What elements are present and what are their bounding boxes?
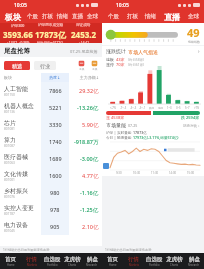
staticText: -7~-5 <box>120 106 127 110</box>
staticText: 全球 <box>87 13 98 20</box>
staticText: 2453.2 <box>71 29 97 40</box>
staticText: 连板 <box>106 57 116 62</box>
staticText: 打板 <box>42 13 53 20</box>
staticText: 1行情助力当日股利量能变化走势 <box>3 248 50 252</box>
staticText: 解盘 <box>189 256 200 263</box>
staticText: 首页 <box>5 256 16 263</box>
button[interactable]: 芯片 <box>0 116 102 133</box>
staticText: 历史对比 › <box>183 123 200 128</box>
staticText: 涨 4538家 <box>106 115 125 120</box>
staticText: +13.07 +0.36% <box>7 41 30 43</box>
staticText: 行情 <box>128 256 139 263</box>
staticText: 电力设备 <box>4 221 28 229</box>
button[interactable]: 沪深300 <box>2 23 34 43</box>
button[interactable]: 首页 <box>102 253 123 269</box>
staticText: 首页 <box>107 256 118 263</box>
staticText: 14:00 <box>169 171 177 175</box>
staticText: Markets <box>129 263 139 267</box>
button[interactable]: 解盘 <box>82 253 102 269</box>
staticText: 10:05 <box>116 2 129 9</box>
staticText: 自选股 <box>146 256 163 263</box>
staticText: Charts <box>68 263 76 267</box>
button[interactable]: 电力设备 <box>0 218 102 235</box>
staticText: 801063 <box>4 161 15 165</box>
staticText: 17973亿(-3.11%,缩量574亿) <box>133 135 179 140</box>
button[interactable]: 直播 <box>70 10 85 23</box>
staticText: 文化传媒 <box>4 170 28 178</box>
staticText: (昨日58家) <box>128 57 145 62</box>
staticText: 今日 | 预测量能 <box>106 135 133 140</box>
staticText: 11:30 <box>151 171 159 175</box>
button[interactable]: 行情 <box>21 253 42 269</box>
button[interactable]: 打板 <box>40 10 55 23</box>
button[interactable]: 文化传媒 <box>0 167 102 184</box>
staticText: 29.32亿 <box>79 87 99 95</box>
button[interactable]: 机器人概念 <box>0 99 102 116</box>
staticText: 07-25 尾盘抢筹 <box>70 49 98 54</box>
staticText: 行业 <box>40 63 50 69</box>
button[interactable]: 自选股 <box>144 253 164 269</box>
button[interactable]: 直播 <box>159 10 184 23</box>
staticText: 工具 <box>92 67 98 71</box>
button[interactable]: 龙虎榜 <box>62 253 82 269</box>
staticText: 07-25 <box>128 123 138 128</box>
button[interactable]: 全球 <box>85 10 100 23</box>
button[interactable]: 人工智能 <box>0 82 102 99</box>
staticText: 情绪 <box>145 13 156 20</box>
button[interactable]: 板块 <box>2 10 24 23</box>
staticText: Research <box>188 263 200 267</box>
button[interactable]: 深证成指 <box>67 23 100 43</box>
staticText: Portfolio <box>47 263 58 267</box>
button[interactable]: 龙虎榜 <box>164 253 184 269</box>
button[interactable]: 展开 <box>103 163 109 169</box>
staticText: 跌 2594家 <box>181 115 200 120</box>
button[interactable]: 情绪 <box>141 10 159 23</box>
button[interactable]: 自选股 <box>42 253 62 269</box>
button[interactable]: 市场量能 <box>106 122 200 129</box>
staticText: 涨跌统计 <box>106 48 128 55</box>
button[interactable]: 精选 <box>4 61 30 70</box>
button[interactable]: 涨跌统计 <box>106 46 200 57</box>
staticText: 2.10亿 <box>82 223 99 231</box>
button[interactable]: 个股 <box>24 10 40 23</box>
staticText: 801150 <box>4 93 15 97</box>
staticText: 打板 <box>127 13 138 20</box>
button[interactable]: 行情 <box>123 253 144 269</box>
button[interactable]: 沪深两市成交额 <box>34 23 67 43</box>
staticText: 全球 <box>188 13 199 20</box>
staticText: 10:30 <box>133 171 141 175</box>
staticText: 1600 <box>49 172 62 179</box>
staticText: -1.25亿 <box>80 206 99 214</box>
staticText: 801081 <box>4 127 15 131</box>
staticText: 个股 <box>27 13 38 20</box>
staticText: 尾盘抢筹 <box>4 47 30 55</box>
staticText: 个股 <box>108 13 119 20</box>
staticText: 实控人变更 <box>4 204 34 212</box>
button[interactable]: 实控人变更 <box>0 201 102 218</box>
staticText: 情绪指数 <box>188 40 200 44</box>
button[interactable]: 首页 <box>0 253 21 269</box>
staticText: 板块 <box>5 12 21 22</box>
staticText: 深证成指 <box>76 23 91 28</box>
button[interactable]: 全球 <box>184 10 202 23</box>
staticText: 3593.66 <box>3 29 33 40</box>
staticText: -5~-3 <box>130 106 137 110</box>
button[interactable]: 个股 <box>104 10 123 23</box>
staticText: 801076 <box>4 195 15 199</box>
button[interactable]: 打板 <box>123 10 141 23</box>
button[interactable]: 解盘 <box>184 253 204 269</box>
button[interactable]: 设置 <box>91 60 98 71</box>
staticText: 3~5 <box>176 106 181 110</box>
staticText: 工具 <box>79 67 85 71</box>
button[interactable]: 行业 <box>34 61 56 70</box>
button[interactable]: 日历 <box>78 60 85 71</box>
staticText: 5221 <box>49 104 62 111</box>
button[interactable]: 情绪 <box>55 10 70 23</box>
button[interactable]: 医疗器械 <box>0 150 102 167</box>
button[interactable]: 乡村振兴 <box>0 184 102 201</box>
button[interactable]: 算力 <box>0 133 102 150</box>
staticText: 801001 <box>4 178 15 182</box>
staticText: 直播 <box>164 12 180 22</box>
staticText: -3.00亿 <box>80 155 99 163</box>
staticText: 905 <box>50 223 60 230</box>
